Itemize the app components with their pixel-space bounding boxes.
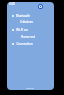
staticText: 2 devices: [20, 20, 33, 24]
staticText: Wi‑Fi on: [16, 28, 28, 32]
staticText: 9:30: [9, 2, 15, 6]
staticText: Home net: [21, 35, 35, 39]
staticText: Bluetooth: [16, 14, 30, 18]
staticText: Connection: [16, 42, 33, 46]
button[interactable]: Bluetooth: [12, 13, 30, 18]
button[interactable]: 2 devices: [20, 19, 33, 24]
button[interactable]: Wi‑Fi on: [12, 27, 28, 32]
button[interactable]: Connection: [12, 41, 33, 46]
button[interactable]: Account: [38, 4, 43, 9]
button[interactable]: Home net: [21, 34, 35, 39]
